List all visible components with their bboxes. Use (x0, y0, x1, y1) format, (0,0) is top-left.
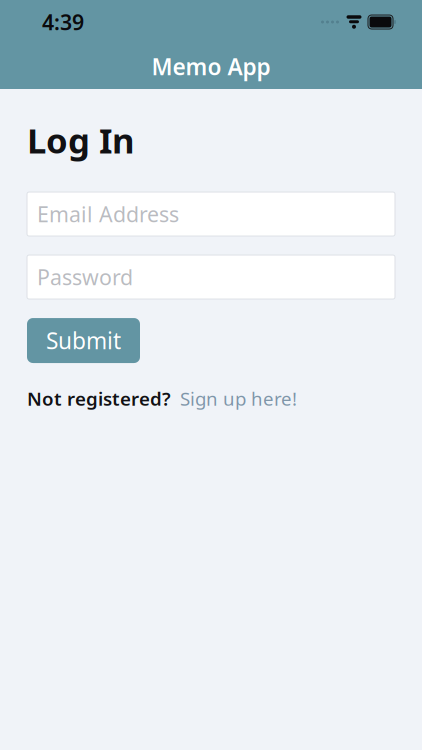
staticText: Submit (46, 325, 121, 356)
staticText: Not registered? (27, 386, 171, 411)
staticText: 4:39 (42, 8, 84, 36)
staticText: Password (37, 263, 133, 291)
staticText: Email Address (37, 200, 179, 228)
staticText: Log In (27, 117, 135, 163)
staticText: Sign up here! (180, 386, 297, 411)
button[interactable]: Sign up here! (180, 386, 297, 411)
staticText: Memo App (151, 51, 270, 81)
button[interactable]: Submit (27, 318, 140, 363)
